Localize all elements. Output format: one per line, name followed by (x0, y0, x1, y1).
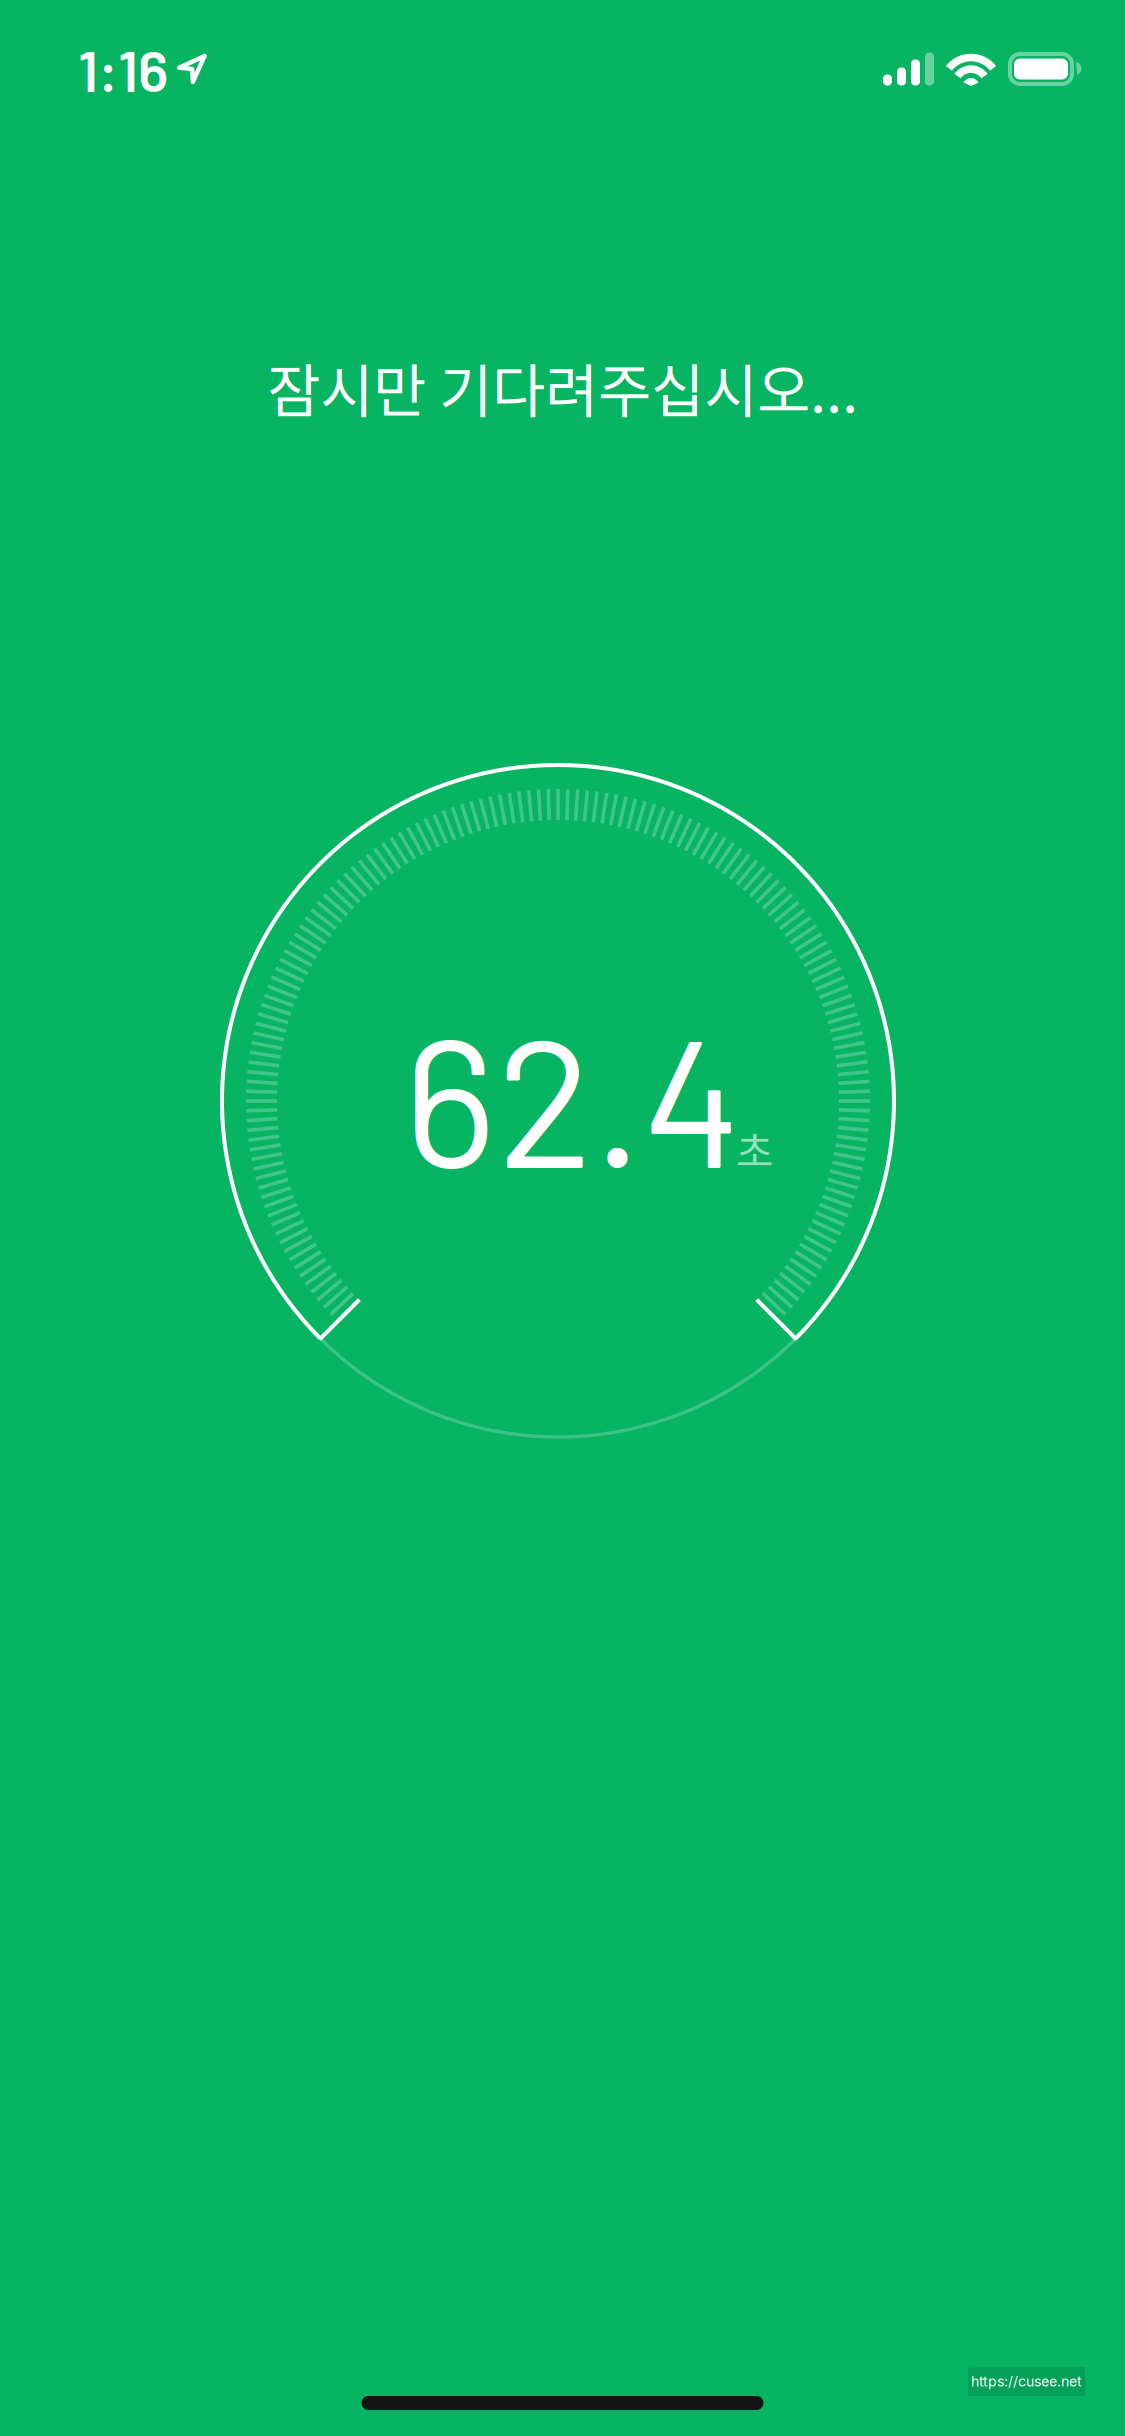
staticText: 초 (736, 1120, 773, 1178)
staticText: 62.4 (403, 988, 741, 1204)
staticText: 1:16 (78, 35, 168, 103)
button[interactable]: 62.4초 남음 (0, 0, 1125, 2436)
staticText: 잠시만 기다려주십시오... (267, 345, 858, 429)
staticText: https://cusee.net (971, 2373, 1082, 2390)
